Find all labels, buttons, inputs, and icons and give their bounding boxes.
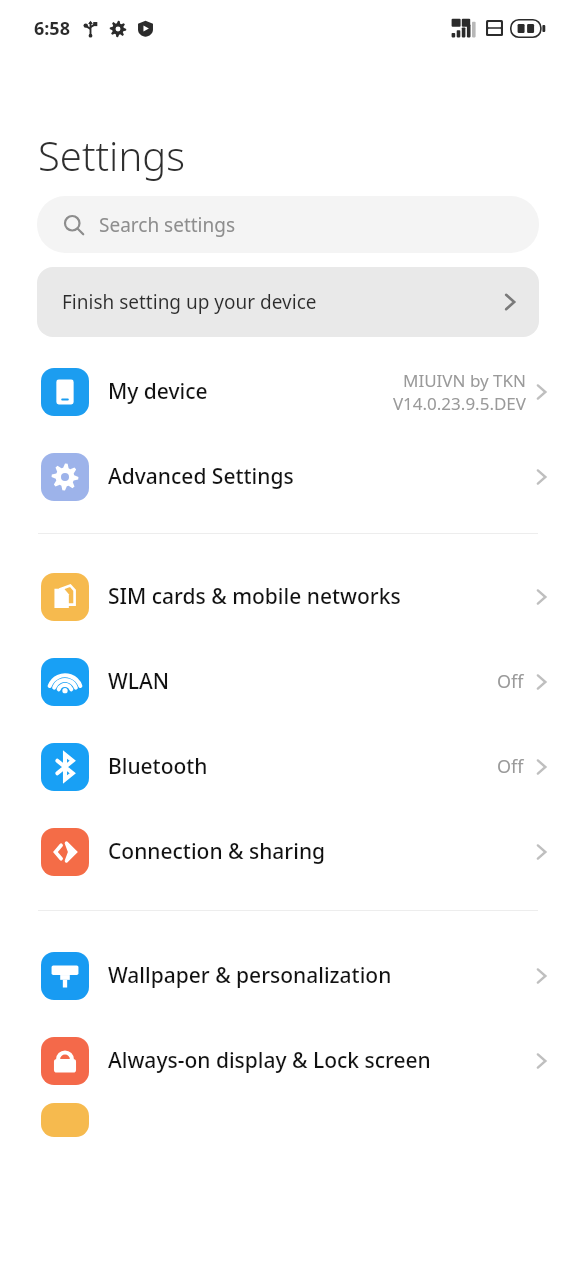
- staticText: V14.0.23.9.5.DEV: [392, 392, 526, 415]
- button[interactable]: Advanced Settings: [0, 434, 576, 519]
- staticText: Search settings: [99, 212, 236, 238]
- button[interactable]: Finish setting up your device: [37, 267, 539, 337]
- staticText: SIM cards & mobile networks: [108, 582, 527, 611]
- button[interactable]: Search settings: [37, 196, 539, 253]
- button[interactable]: Bluetooth: [0, 724, 576, 809]
- button[interactable]: Wallpaper & personalization: [0, 933, 576, 1018]
- staticText: Finish setting up your device: [62, 289, 503, 315]
- staticText: Settings: [38, 128, 185, 182]
- staticText: MIUIVN by TKN: [402, 369, 526, 392]
- button[interactable]: [0, 1103, 576, 1137]
- button[interactable]: My device: [0, 349, 576, 434]
- staticText: Wallpaper & personalization: [108, 961, 527, 990]
- staticText: Off: [497, 754, 524, 779]
- staticText: 6:58: [34, 16, 70, 41]
- staticText: Advanced Settings: [108, 462, 527, 491]
- staticText: WLAN: [108, 667, 497, 696]
- staticText: Off: [497, 669, 524, 694]
- button[interactable]: Always-on display & Lock screen: [0, 1018, 576, 1103]
- staticText: Bluetooth: [108, 752, 497, 781]
- staticText: My device: [108, 377, 392, 406]
- staticText: Always-on display & Lock screen: [108, 1046, 527, 1075]
- button[interactable]: Connection & sharing: [0, 809, 576, 894]
- button[interactable]: WLAN: [0, 639, 576, 724]
- staticText: Connection & sharing: [108, 837, 527, 866]
- button[interactable]: SIM cards & mobile networks: [0, 554, 576, 639]
